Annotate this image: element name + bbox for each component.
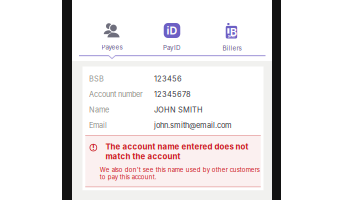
- staticText: iD: [166, 24, 177, 37]
- staticText: We also don't see this name used by othe…: [100, 166, 260, 181]
- button[interactable]: B: [202, 0, 262, 55]
- staticText: BSB: [89, 74, 104, 83]
- staticText: The account name entered does not match …: [105, 142, 248, 161]
- staticText: PayID: [163, 44, 181, 52]
- staticText: john.smith@email.com: [154, 121, 232, 130]
- button[interactable]: Payees: [82, 0, 142, 55]
- staticText: JOHN SMITH: [154, 105, 203, 114]
- staticText: Billers: [222, 44, 241, 52]
- staticText: 123456: [154, 74, 182, 83]
- staticText: !: [92, 143, 94, 152]
- staticText: Payees: [101, 43, 122, 51]
- staticText: Name: [89, 105, 109, 114]
- staticText: 12345678: [154, 90, 191, 99]
- staticText: BPAY: [228, 34, 236, 38]
- staticText: B: [230, 26, 237, 38]
- button[interactable]: iD: [142, 0, 202, 55]
- staticText: Email: [89, 121, 107, 130]
- staticText: Account number: [89, 90, 143, 99]
